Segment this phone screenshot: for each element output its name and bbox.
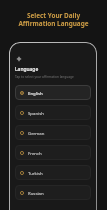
button[interactable]: English (15, 85, 91, 100)
button[interactable]: Spanish (15, 105, 91, 120)
staticText: Select Your Daily Affirmation Language (18, 11, 89, 28)
staticText: German (28, 130, 45, 136)
button[interactable]: German (15, 125, 91, 140)
staticText: Language (15, 66, 39, 73)
staticText: Russian (28, 190, 44, 196)
staticText: Spanish (28, 110, 44, 116)
staticText: French (28, 150, 42, 156)
button[interactable]: French (15, 145, 91, 160)
staticText: Turkish (28, 170, 43, 176)
button[interactable]: Turkish (15, 165, 91, 180)
staticText: English (28, 90, 43, 96)
button[interactable]: Russian (15, 185, 91, 200)
staticText: Tap to select your affirmation language (15, 75, 74, 79)
